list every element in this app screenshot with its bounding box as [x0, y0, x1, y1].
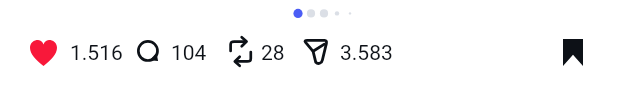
button[interactable]: Share — [303, 39, 328, 65]
staticText: 28 — [261, 41, 285, 66]
staticText: 104 — [171, 41, 207, 66]
button[interactable]: Repost — [229, 37, 252, 66]
button[interactable]: Like — [30, 40, 57, 66]
staticText: 1.516 — [70, 41, 123, 66]
staticText: 3.583 — [340, 41, 393, 66]
button[interactable]: Save — [563, 39, 583, 66]
button[interactable]: Comment — [137, 40, 161, 64]
